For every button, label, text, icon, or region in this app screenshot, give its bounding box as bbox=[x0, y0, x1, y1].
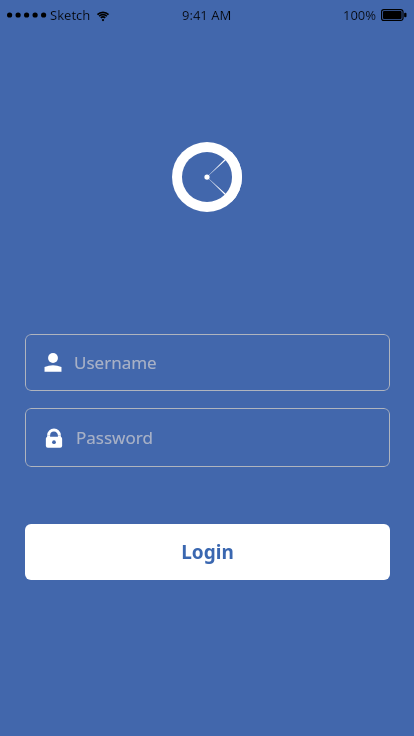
button[interactable]: Password bbox=[25, 408, 390, 467]
staticText: Password bbox=[76, 426, 153, 449]
button[interactable]: Login bbox=[25, 524, 390, 580]
staticText: Login bbox=[181, 539, 234, 565]
staticText: 9:41 AM bbox=[182, 6, 232, 24]
button[interactable]: Username bbox=[25, 334, 390, 391]
staticText: 100% bbox=[343, 6, 377, 24]
staticText: Sketch bbox=[50, 6, 91, 24]
staticText: Username bbox=[74, 351, 157, 374]
